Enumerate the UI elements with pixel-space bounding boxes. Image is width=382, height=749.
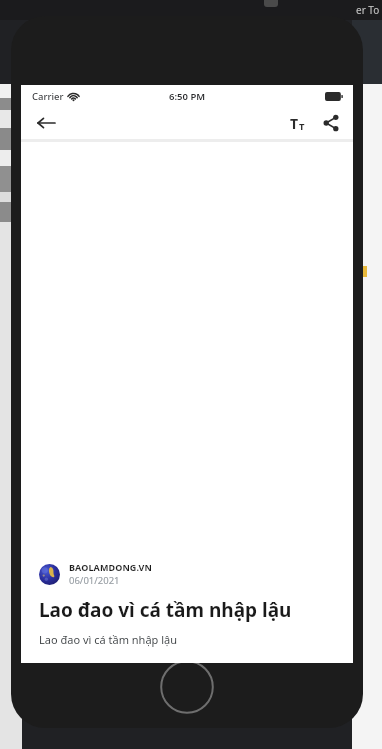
staticText: Lao đao vì cá tầm nhập lậu [39,597,292,623]
staticText: T [290,114,299,133]
button[interactable]: Text size [281,107,313,139]
staticText: T [299,120,305,133]
staticText: th [354,293,364,307]
staticText: 6:50 PM [169,90,206,103]
button[interactable]: Share [315,107,347,139]
staticText: ta [354,98,364,112]
staticText: er To [356,3,380,17]
button[interactable]: Back [29,107,63,139]
staticText: Lao đao vì cá tầm nhập lậu [39,632,178,647]
staticText: 06/01/2021 [69,574,120,587]
staticText: Carrier [32,90,64,103]
staticText: BAOLAMDONG.VN [69,561,152,573]
